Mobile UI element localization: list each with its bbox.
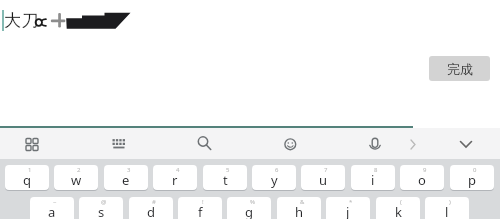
staticText: s [98, 203, 105, 219]
staticText: @ [101, 198, 107, 206]
staticText: j [346, 203, 350, 219]
staticText: e [122, 171, 130, 189]
staticText: ) [449, 198, 451, 206]
staticText: * [349, 198, 353, 206]
button[interactable]: w [54, 165, 98, 190]
button[interactable] [362, 131, 388, 157]
button[interactable]: y [252, 165, 296, 190]
staticText: u [319, 171, 328, 189]
staticText: 3 [127, 166, 131, 174]
button[interactable]: i [351, 165, 395, 190]
button[interactable]: h [277, 197, 321, 219]
button[interactable]: 完成 [429, 56, 490, 81]
staticText: i [371, 171, 375, 189]
staticText: 完成 [447, 61, 473, 77]
button[interactable]: l [425, 197, 469, 219]
staticText: d [147, 203, 155, 219]
button[interactable]: p [450, 165, 494, 190]
button[interactable] [19, 131, 45, 157]
button[interactable]: t [203, 165, 247, 190]
button[interactable]: r [153, 165, 197, 190]
staticText: 5 [226, 166, 230, 174]
staticText: ~ [53, 198, 57, 206]
staticText: 4 [176, 166, 180, 174]
staticText: r [172, 171, 178, 189]
staticText: f [198, 203, 203, 219]
button[interactable] [452, 131, 480, 157]
staticText: g [245, 203, 253, 219]
button[interactable]: u [301, 165, 345, 190]
button[interactable]: j [326, 197, 370, 219]
staticText: y [271, 171, 278, 189]
staticText: 8 [374, 166, 378, 174]
button[interactable]: o [400, 165, 444, 190]
staticText: & [300, 198, 305, 206]
staticText: 0 [473, 166, 477, 174]
staticText: l [445, 203, 449, 219]
staticText: w [71, 171, 82, 189]
staticText: # [152, 198, 156, 206]
staticText: 大刀 [4, 10, 40, 31]
staticText: % [250, 198, 255, 206]
button[interactable]: s [79, 197, 123, 219]
staticText: t [223, 171, 228, 189]
button[interactable]: a [30, 197, 74, 219]
staticText: k [395, 203, 402, 219]
button[interactable]: g [227, 197, 271, 219]
staticText: ( [400, 198, 402, 206]
button[interactable]: e [104, 165, 148, 190]
staticText: q [23, 171, 31, 189]
button[interactable]: d [129, 197, 173, 219]
staticText: 7 [324, 166, 328, 174]
staticText: o [418, 171, 426, 189]
staticText: ! [202, 198, 204, 206]
button[interactable] [191, 130, 217, 156]
button[interactable] [106, 131, 132, 157]
button[interactable]: k [376, 197, 420, 219]
button[interactable] [277, 131, 303, 157]
staticText: p [468, 171, 476, 189]
button[interactable]: q [5, 165, 49, 190]
staticText: 9 [423, 166, 427, 174]
staticText: 1 [28, 166, 32, 174]
staticText: h [295, 203, 304, 219]
staticText: a [48, 203, 56, 219]
staticText: 2 [77, 166, 81, 174]
staticText: 6 [275, 166, 279, 174]
button[interactable]: f [178, 197, 222, 219]
